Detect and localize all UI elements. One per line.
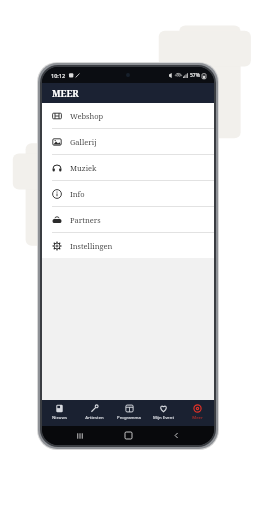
button[interactable]: Meer bbox=[180, 400, 214, 426]
staticText: Artiesten bbox=[85, 415, 104, 421]
button[interactable]: Webshop bbox=[42, 103, 214, 128]
staticText: Meer bbox=[192, 415, 203, 421]
staticText: Info bbox=[70, 189, 85, 199]
staticText: Webshop bbox=[70, 111, 104, 121]
button[interactable]: Muziek bbox=[42, 155, 214, 180]
button[interactable]: Instellingen bbox=[42, 233, 214, 258]
button[interactable]: Mijn Event bbox=[146, 400, 180, 426]
staticText: Muziek bbox=[70, 163, 97, 173]
staticText: 57% bbox=[190, 72, 200, 79]
staticText: Gallerij bbox=[70, 137, 97, 147]
button[interactable]: Artiesten bbox=[77, 400, 112, 426]
button[interactable]: Back bbox=[166, 426, 186, 445]
staticText: Instellingen bbox=[70, 241, 113, 251]
staticText: Partners bbox=[70, 215, 101, 225]
button[interactable]: Recents bbox=[70, 426, 90, 445]
button[interactable]: Partners bbox=[42, 207, 214, 232]
button[interactable]: Gallerij bbox=[42, 129, 214, 154]
button[interactable]: Nieuws bbox=[42, 400, 77, 426]
button[interactable]: Home bbox=[118, 426, 138, 445]
staticText: Nieuws bbox=[52, 415, 67, 421]
staticText: MEER bbox=[52, 87, 79, 99]
button[interactable]: Programma bbox=[112, 400, 146, 426]
staticText: 10:12 bbox=[51, 72, 66, 79]
staticText: Mijn Event bbox=[153, 415, 174, 421]
staticText: Programma bbox=[117, 415, 141, 421]
button[interactable]: Info bbox=[42, 181, 214, 206]
